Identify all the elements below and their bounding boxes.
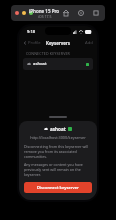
staticText: CONNECTED KEYSERVER — [26, 51, 70, 56]
button[interactable]: ashoat — [23, 58, 93, 70]
button[interactable]: Rotate — [77, 9, 85, 17]
staticText: ashoat — [50, 126, 66, 132]
button[interactable]: Add — [81, 38, 97, 48]
staticText: Profile — [28, 40, 41, 46]
staticText: ashoat — [33, 61, 47, 67]
staticText: Disconnecting from this keyserver will r… — [24, 144, 92, 159]
button[interactable]: Screenshot — [92, 9, 100, 17]
staticText: iOS 17.5 — [38, 14, 52, 19]
staticText: 9:18 — [27, 29, 35, 34]
staticText: Disconnect keyserver — [37, 185, 79, 190]
button[interactable]: Disconnect keyserver — [24, 182, 92, 193]
staticText: Keyservers — [46, 40, 70, 46]
staticText: iPhone 15 Pro — [29, 8, 60, 14]
button[interactable]: Profile — [19, 38, 44, 48]
staticText: Add — [85, 40, 93, 46]
staticText: http://localhost:3000/keyserver — [30, 135, 86, 140]
staticText: Any messages or content you have previou… — [24, 162, 92, 177]
button[interactable]: Home — [62, 9, 70, 17]
